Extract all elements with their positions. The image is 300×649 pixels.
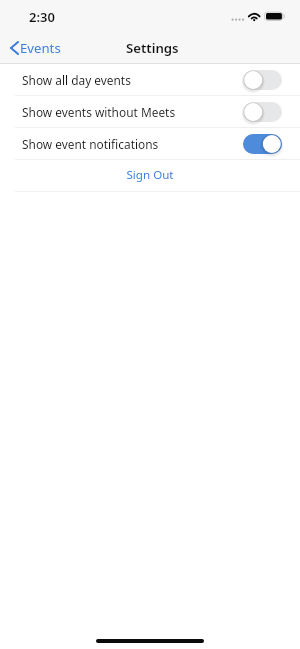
- button[interactable]: Show event notifications: [0, 128, 300, 159]
- staticText: Show event notifications: [22, 136, 243, 152]
- staticText: Events: [20, 39, 61, 57]
- button[interactable]: Sign Out: [0, 160, 300, 191]
- staticText: 2:30: [29, 8, 55, 26]
- button[interactable]: Toggle off: [243, 102, 282, 122]
- button[interactable]: Events: [0, 35, 69, 61]
- button[interactable]: Show all day events: [0, 64, 300, 95]
- button[interactable]: Toggle off: [243, 70, 282, 90]
- staticText: Settings: [126, 39, 179, 57]
- staticText: Sign Out: [126, 167, 174, 183]
- staticText: Show all day events: [22, 72, 243, 88]
- button[interactable]: Toggle on: [243, 134, 282, 154]
- staticText: Show events without Meets: [22, 104, 243, 120]
- button[interactable]: Show events without Meets: [0, 96, 300, 127]
